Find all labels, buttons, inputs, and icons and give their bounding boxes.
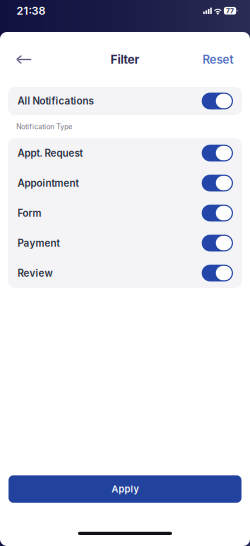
button[interactable]: Back <box>13 46 34 72</box>
staticText: Form <box>17 207 41 219</box>
button[interactable]: All Notifications <box>8 87 242 115</box>
button[interactable]: Form <box>8 198 242 228</box>
staticText: Appt. Request <box>17 147 82 159</box>
button[interactable]: Review <box>8 258 242 288</box>
staticText: Filter <box>110 52 139 67</box>
staticText: All Notifications <box>17 95 93 107</box>
button[interactable]: Appointment <box>8 168 242 198</box>
staticText: Review <box>17 267 52 279</box>
staticText: Payment <box>17 237 59 249</box>
button[interactable]: Reset <box>202 46 233 72</box>
button[interactable]: Apply <box>8 475 241 503</box>
button[interactable]: Payment <box>8 228 242 258</box>
staticText: Appointment <box>17 177 78 189</box>
staticText: Notification Type <box>16 122 72 131</box>
staticText: Apply <box>111 483 138 495</box>
staticText: 21:38 <box>17 4 46 17</box>
staticText: Reset <box>202 52 233 66</box>
button[interactable]: Appt. Request <box>8 138 242 168</box>
staticText: 77 <box>226 7 234 15</box>
